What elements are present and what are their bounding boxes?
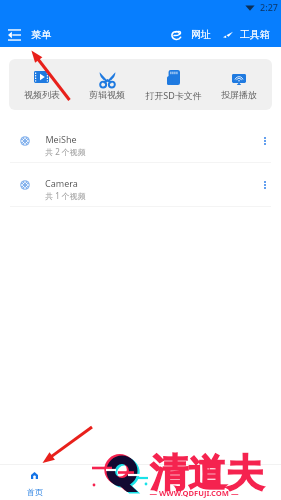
- staticText: 剪辑视频: [89, 89, 125, 100]
- button[interactable]: Camera: [0, 163, 281, 206]
- staticText: MeiShe: [45, 133, 77, 145]
- button[interactable]: 打开SD卡文件: [140, 59, 206, 110]
- staticText: 共 1 个视频: [45, 190, 86, 201]
- button[interactable]: 剪辑视频: [74, 59, 140, 110]
- staticText: 打开SD卡文件: [145, 89, 202, 101]
- staticText: Camera: [45, 177, 78, 189]
- button[interactable]: 网址: [168, 22, 214, 41]
- staticText: 工具箱: [240, 28, 270, 41]
- button[interactable]: Menu: [0, 22, 57, 41]
- staticText: 菜单: [31, 28, 51, 41]
- staticText: — WWW.QDFUJI.COM —: [149, 488, 239, 498]
- staticText: 网址: [191, 28, 211, 41]
- button[interactable]: More options: [254, 174, 276, 196]
- button[interactable]: 视频列表: [9, 59, 74, 110]
- button[interactable]: MeiShe: [0, 119, 281, 162]
- button[interactable]: 工具箱: [220, 22, 281, 41]
- button[interactable]: 投屏播放: [206, 59, 272, 110]
- staticText: 投屏播放: [221, 89, 257, 100]
- staticText: 2:27: [260, 1, 278, 13]
- button[interactable]: 首页: [0, 465, 69, 500]
- other: Menu: [8, 29, 21, 41]
- staticText: 共 2 个视频: [45, 146, 86, 157]
- staticText: 清道夫: [150, 449, 264, 497]
- button[interactable]: More options: [254, 130, 276, 152]
- staticText: 首页: [27, 487, 43, 497]
- staticText: 视频列表: [24, 89, 60, 100]
